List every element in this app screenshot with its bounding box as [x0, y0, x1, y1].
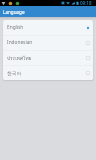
staticText: Language: [3, 9, 25, 15]
staticText: 한국어: [7, 70, 22, 76]
other: Selected: [85, 25, 91, 31]
button[interactable]: 한국어: [3, 65, 93, 80]
staticText: 09:18: [80, 0, 92, 6]
staticText: English: [7, 24, 24, 31]
other: Not selected: [85, 70, 91, 76]
staticText: Indonesian: [7, 39, 33, 46]
other: Not selected: [85, 40, 91, 46]
other: Not selected: [85, 55, 91, 61]
button[interactable]: ประเทศไทย: [3, 50, 93, 65]
button[interactable]: English: [3, 20, 93, 35]
staticText: ประเทศไทย: [7, 54, 32, 62]
button[interactable]: Indonesian: [3, 35, 93, 50]
